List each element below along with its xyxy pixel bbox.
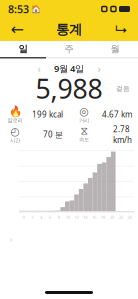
staticText: 5,988 [35,71,102,106]
staticText: 4 [40,214,42,220]
staticText: 🔥 [8,105,21,117]
staticText: ⮡ [115,22,127,37]
staticText: 월 [110,43,119,55]
staticText: 일 [18,43,27,55]
staticText: 199 kcal [32,109,63,120]
staticText: ◴ [10,125,19,137]
staticText: 속도 [79,136,89,143]
staticText: 8:53 [8,2,29,16]
staticText: 주 [64,43,73,55]
staticText: 8 [58,214,60,220]
staticText: 칼로리 [7,117,22,124]
button[interactable]: Back [4,18,30,40]
staticText: 시간 [10,137,20,144]
staticText: ← [10,20,23,39]
staticText: 4.67 km [102,109,132,120]
button[interactable]: 일 [0,41,46,57]
staticText: ◎ [79,105,88,117]
staticText: 10 [66,214,70,220]
staticText: 6 [49,214,51,220]
staticText: 거리 [79,117,89,124]
staticText: 통계 [56,21,82,38]
staticText: 9월 4일 [54,62,84,75]
button[interactable]: 월 [92,41,138,57]
button[interactable]: 주 [46,41,92,57]
staticText: ⧖ [80,126,87,136]
staticText: 70 분 [43,129,63,140]
staticText: 🏠 [31,4,41,13]
staticText: 20 [110,214,114,220]
staticText: 0 [22,214,24,220]
staticText: 22 [119,214,123,220]
staticText: 걸음 [116,84,130,93]
staticText: 12 [74,214,78,220]
button[interactable]: Previous day [34,62,44,74]
staticText: › [97,61,100,76]
button[interactable]: Share [108,18,134,40]
staticText: 0 [10,237,12,243]
staticText: 16 [92,214,96,220]
button[interactable]: Next day [94,62,104,74]
staticText: 14 [83,214,87,220]
staticText: 2 [31,214,33,220]
staticText: ‹ [37,61,40,76]
staticText: 24 [128,214,132,220]
staticText: 2.78 km/h [113,124,132,145]
staticText: 18 [101,214,105,220]
